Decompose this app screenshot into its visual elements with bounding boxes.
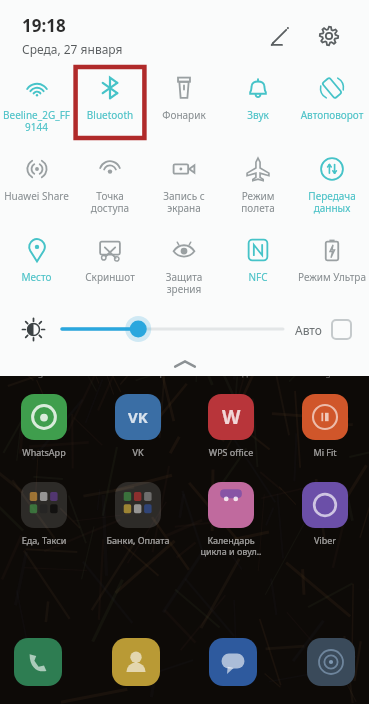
staticText: Beeline_2G_FF 9144 — [0, 108, 73, 134]
button[interactable]: Режим полета — [221, 148, 295, 219]
button[interactable]: Звук — [221, 67, 295, 126]
button[interactable]: Mi Fit — [289, 394, 361, 458]
button[interactable]: Точка доступа — [73, 148, 147, 219]
button[interactable]: Передача данных — [295, 148, 369, 219]
staticText: WhatsApp — [8, 446, 80, 458]
staticText: Скриншот — [73, 270, 147, 284]
staticText: 19:18 — [22, 14, 66, 37]
staticText: Фонарик — [147, 108, 221, 122]
button[interactable]: Settings — [309, 16, 349, 56]
button[interactable]: Запись с экрана — [147, 148, 221, 219]
staticText: VK — [102, 446, 174, 458]
staticText: Звук — [221, 108, 295, 122]
staticText: Среда, 27 января — [22, 41, 123, 57]
staticText: Запись с экрана — [147, 189, 221, 215]
button[interactable]: Messages — [209, 638, 257, 686]
button[interactable]: Скриншот — [73, 229, 147, 288]
button[interactable]: Viber — [289, 482, 361, 546]
staticText: W — [222, 404, 241, 430]
staticText: Huawei Share — [0, 189, 73, 203]
button[interactable]: Защита зрения — [147, 229, 221, 300]
button[interactable]: Еда, Такси — [8, 482, 80, 546]
staticText: Instagram — [304, 366, 348, 378]
staticText: WPS office — [195, 446, 267, 458]
button[interactable]: Collapse — [0, 351, 369, 376]
button[interactable]: Авто — [295, 320, 351, 339]
staticText: Место — [0, 270, 73, 284]
staticText: NFC — [221, 270, 295, 284]
button[interactable]: Beeline_2G_FF 9144 — [0, 67, 73, 138]
staticText: Viber — [289, 534, 361, 546]
staticText: Еда, Такси — [8, 534, 80, 546]
staticText: Банки, Оплата — [102, 534, 174, 546]
button[interactable]: VK — [102, 394, 174, 458]
button[interactable]: Edit — [259, 16, 299, 56]
staticText: Автоповорот — [295, 108, 369, 122]
staticText: Передача данных — [295, 189, 369, 215]
button[interactable]: WhatsApp — [8, 394, 80, 458]
button[interactable]: Режим Ультра — [295, 229, 369, 288]
button[interactable]: Фонарик — [147, 67, 221, 126]
staticText: Яндекс — [231, 366, 262, 378]
button[interactable]: Phone — [14, 638, 62, 686]
button[interactable]: Календарь цикла и овул.. — [195, 482, 267, 557]
staticText: Календарь цикла и овул.. — [195, 534, 267, 557]
staticText: Защита зрения — [147, 270, 221, 296]
button[interactable]: Банки, Оплата — [102, 482, 174, 546]
button[interactable]: Brightness — [62, 312, 283, 346]
staticText: Фильмы и сериалы — [103, 366, 188, 378]
staticText: Точка доступа — [73, 189, 147, 215]
button[interactable]: NFC — [221, 229, 295, 288]
staticText: Режим полета — [221, 189, 295, 215]
button[interactable]: Автоповорот — [295, 67, 369, 126]
button[interactable]: Camera — [307, 638, 355, 686]
button[interactable]: Место — [0, 229, 73, 288]
staticText: Bluetooth — [73, 108, 147, 122]
staticText: Режим Ультра — [295, 270, 369, 284]
button[interactable]: W — [195, 394, 267, 458]
staticText: VK — [128, 407, 148, 427]
button[interactable]: Bluetooth — [73, 67, 147, 126]
staticText: Авто — [295, 322, 322, 338]
button[interactable]: Contacts — [112, 638, 160, 686]
staticText: Telegram — [21, 366, 61, 378]
staticText: Mi Fit — [289, 446, 361, 458]
button[interactable]: Huawei Share — [0, 148, 73, 207]
